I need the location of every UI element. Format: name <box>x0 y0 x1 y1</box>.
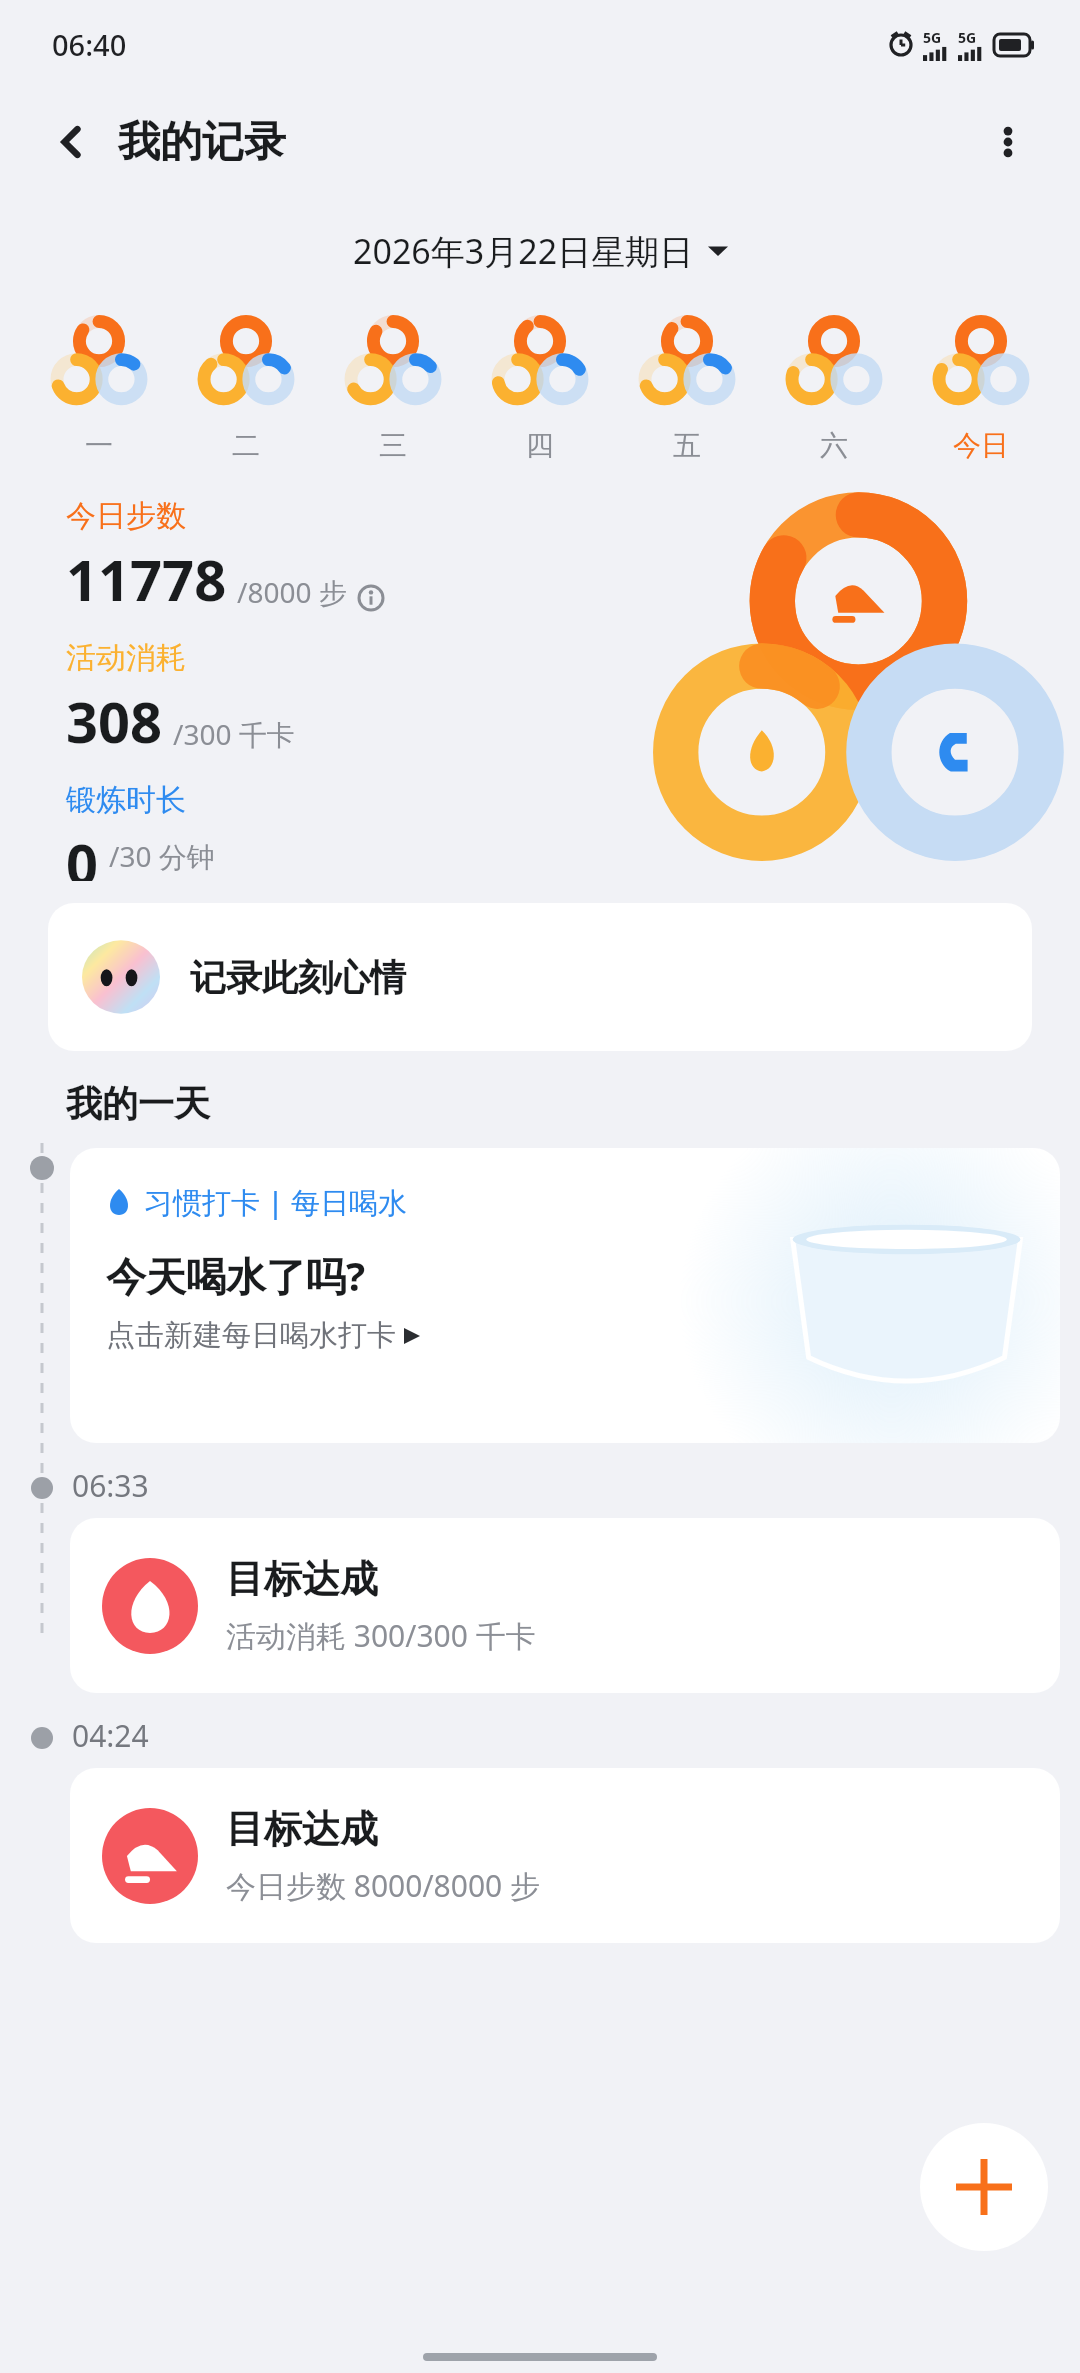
staticText: 0 <box>66 825 99 881</box>
staticText: 我的记录 <box>118 116 286 169</box>
button[interactable]: 六 <box>760 312 907 463</box>
staticText: 11778 <box>66 541 227 617</box>
staticText: 04:24 <box>72 1715 149 1756</box>
staticText: 06:33 <box>72 1465 149 1506</box>
button[interactable]: 三 <box>319 312 466 463</box>
staticText: 三 <box>379 428 407 463</box>
staticText: 5G <box>923 28 942 47</box>
button[interactable]: Add record <box>920 2123 1048 2251</box>
button[interactable]: 二 <box>172 312 319 463</box>
staticText: 目标达成 <box>226 1805 378 1853</box>
staticText: 今日步数 8000/8000 步 <box>226 1865 541 1906</box>
staticText: 习惯打卡 | 每日喝水 <box>144 1182 408 1222</box>
button[interactable]: 目标达成 <box>70 1768 1060 1943</box>
staticText: 5G <box>958 28 977 47</box>
staticText: 我的一天 <box>66 1081 210 1126</box>
staticText: 今日 <box>953 428 1009 463</box>
staticText: /300 千卡 <box>173 715 295 753</box>
staticText: 2026年3月22日星期日 <box>353 228 694 274</box>
staticText: 二 <box>232 428 260 463</box>
button[interactable]: 今日 <box>907 312 1054 463</box>
staticText: 四 <box>526 428 554 463</box>
button[interactable]: 目标达成 <box>70 1518 1060 1693</box>
staticText: 五 <box>673 428 701 463</box>
staticText: 今天喝水了吗? <box>106 1248 366 1303</box>
button[interactable]: 一 <box>26 312 172 463</box>
staticText: 点击新建每日喝水打卡 <box>106 1317 396 1354</box>
button[interactable]: 记录此刻心情 <box>48 903 1032 1051</box>
staticText: 记录此刻心情 <box>190 955 406 1000</box>
staticText: 活动消耗 <box>66 639 186 677</box>
button[interactable]: 2026年3月22日星期日 <box>0 196 1080 306</box>
button[interactable]: 四 <box>466 312 613 463</box>
staticText: /8000 步 <box>237 573 347 611</box>
staticText: 六 <box>820 428 848 463</box>
staticText: 一 <box>85 428 113 463</box>
button[interactable]: 习惯打卡 | 每日喝水 <box>70 1148 1060 1443</box>
staticText: 308 <box>66 683 163 759</box>
staticText: 目标达成 <box>226 1555 378 1603</box>
button[interactable]: More options <box>976 110 1040 174</box>
staticText: 活动消耗 300/300 千卡 <box>226 1615 536 1656</box>
staticText: 06:40 <box>52 25 127 64</box>
button[interactable]: 五 <box>613 312 760 463</box>
staticText: 锻炼时长 <box>66 781 186 819</box>
staticText: 今日步数 <box>66 497 186 535</box>
staticText: /30 分钟 <box>109 837 215 875</box>
button[interactable]: Back <box>40 110 104 174</box>
